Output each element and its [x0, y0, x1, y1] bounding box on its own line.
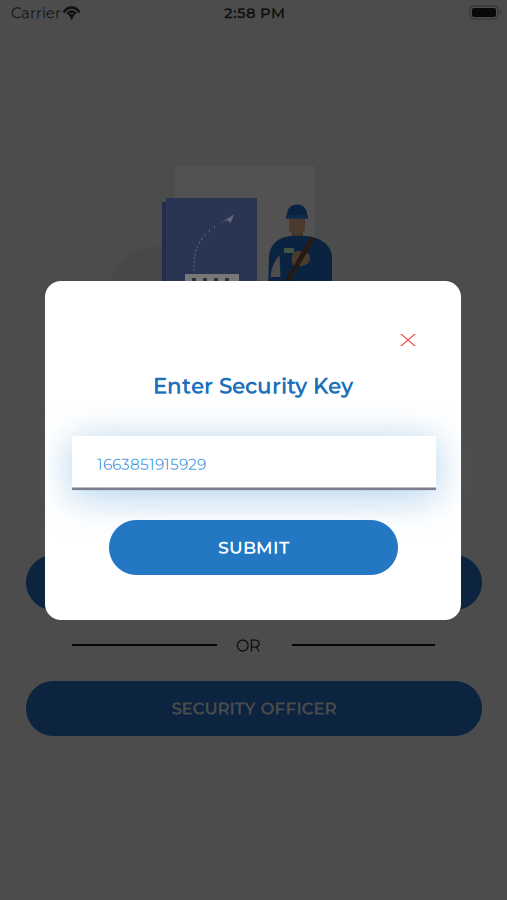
button[interactable]: SECURITY SUPERVISOR	[26, 555, 482, 610]
staticText: Carrier	[11, 4, 61, 22]
staticText: OR	[236, 636, 261, 655]
staticText: 2:58 PM	[224, 4, 285, 22]
staticText: 1663851915929	[97, 455, 206, 474]
staticText: SECURITY SUPERVISOR	[154, 572, 354, 593]
staticText: SECURITY OFFICER	[171, 698, 336, 719]
staticText: SUBMIT	[218, 537, 289, 558]
button[interactable]: Close	[391, 323, 425, 357]
button[interactable]: SECURITY OFFICER	[26, 681, 482, 736]
staticText: Enter Security Key	[153, 373, 353, 399]
button[interactable]: SUBMIT	[109, 520, 398, 575]
